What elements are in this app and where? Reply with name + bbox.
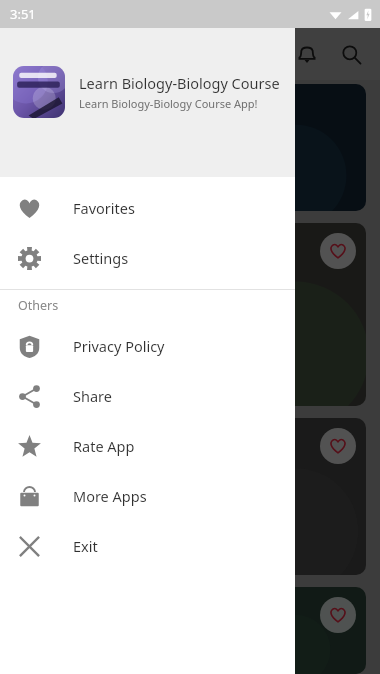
- staticText: Share: [73, 386, 112, 406]
- button[interactable]: Settings: [0, 233, 295, 283]
- staticText: Rate App: [73, 436, 135, 456]
- staticText: 3:51: [10, 5, 36, 23]
- button[interactable]: Plasmid: [14, 223, 366, 406]
- button[interactable]: More Apps: [0, 471, 295, 521]
- button[interactable]: Favorite: [14, 587, 366, 674]
- staticText: More Apps: [73, 486, 147, 506]
- button[interactable]: Endoplasmic Reticulum: [14, 418, 366, 575]
- button[interactable]: [14, 84, 366, 211]
- staticText: Exit: [73, 536, 98, 556]
- staticText: Plasmid: [32, 306, 84, 324]
- button[interactable]: Privacy Policy: [0, 321, 295, 371]
- button[interactable]: Favorite: [320, 597, 356, 633]
- button[interactable]: Favorite: [320, 428, 356, 464]
- staticText: Learn Biology-Biology Course: [79, 73, 280, 93]
- button[interactable]: Favorites: [0, 183, 295, 233]
- staticText: Endoplasmic Reticulum: [32, 479, 114, 515]
- staticText: Learn Biology-Biology Course App!: [79, 96, 258, 111]
- staticText: Settings: [73, 248, 129, 268]
- button[interactable]: Notifications: [294, 41, 320, 67]
- button[interactable]: Favorite: [320, 233, 356, 269]
- button[interactable]: Search: [338, 41, 364, 67]
- button[interactable]: Rate App: [0, 421, 295, 471]
- staticText: Others: [18, 297, 59, 314]
- button[interactable]: Exit: [0, 521, 295, 571]
- staticText: Privacy Policy: [73, 336, 165, 356]
- button[interactable]: Share: [0, 371, 295, 421]
- staticText: Favorites: [73, 198, 135, 218]
